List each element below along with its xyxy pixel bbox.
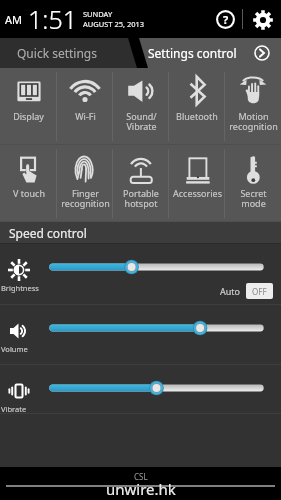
staticText: Sound/ Vibrate <box>126 110 157 133</box>
staticText: 1:51 <box>28 2 77 36</box>
button[interactable]: Sound/ Vibrate <box>113 68 169 145</box>
button[interactable]: Quick settings <box>0 38 137 68</box>
staticText: Vibrate <box>1 404 27 413</box>
staticText: Portable hotspot <box>123 187 159 210</box>
staticText: Display <box>13 110 44 122</box>
button[interactable]: Motion recognition <box>225 68 281 145</box>
staticText: Speed control <box>9 225 87 241</box>
button[interactable]: Display <box>0 68 57 145</box>
button[interactable]: Wi-Fi <box>57 68 113 145</box>
staticText: Motion recognition <box>229 110 278 133</box>
button[interactable]: Bluetooth <box>169 68 225 145</box>
staticText: Finger recognition <box>61 187 110 210</box>
staticText: Bluetooth <box>176 110 218 122</box>
button[interactable]: OFF <box>246 283 273 299</box>
button[interactable]: Accessories <box>169 145 225 222</box>
staticText: AM <box>5 12 23 27</box>
button[interactable]: Help <box>212 6 239 33</box>
staticText: AUGUST 25, 2013 <box>83 19 145 29</box>
staticText: unwire.hk <box>106 479 176 499</box>
staticText: Secret mode <box>240 187 267 210</box>
staticText: OFF <box>252 286 267 297</box>
staticText: Wi-Fi <box>75 110 96 122</box>
staticText: V touch <box>13 187 45 199</box>
staticText: CSL <box>134 471 148 482</box>
staticText: Brightness <box>1 283 39 293</box>
staticText: Accessories <box>173 187 222 199</box>
staticText: SUNDAY <box>83 9 113 19</box>
staticText: Quick settings <box>17 45 97 61</box>
staticText: Settings control <box>148 45 237 61</box>
button[interactable]: Settings control <box>137 38 281 68</box>
button[interactable]: Portable hotspot <box>113 145 169 222</box>
button[interactable]: Finger recognition <box>57 145 113 222</box>
button[interactable]: V touch <box>0 145 57 222</box>
button[interactable]: Settings <box>249 6 276 33</box>
staticText: Auto <box>220 285 241 297</box>
staticText: ? <box>223 12 229 27</box>
button[interactable]: Secret mode <box>225 145 281 222</box>
staticText: Volume <box>1 344 28 354</box>
